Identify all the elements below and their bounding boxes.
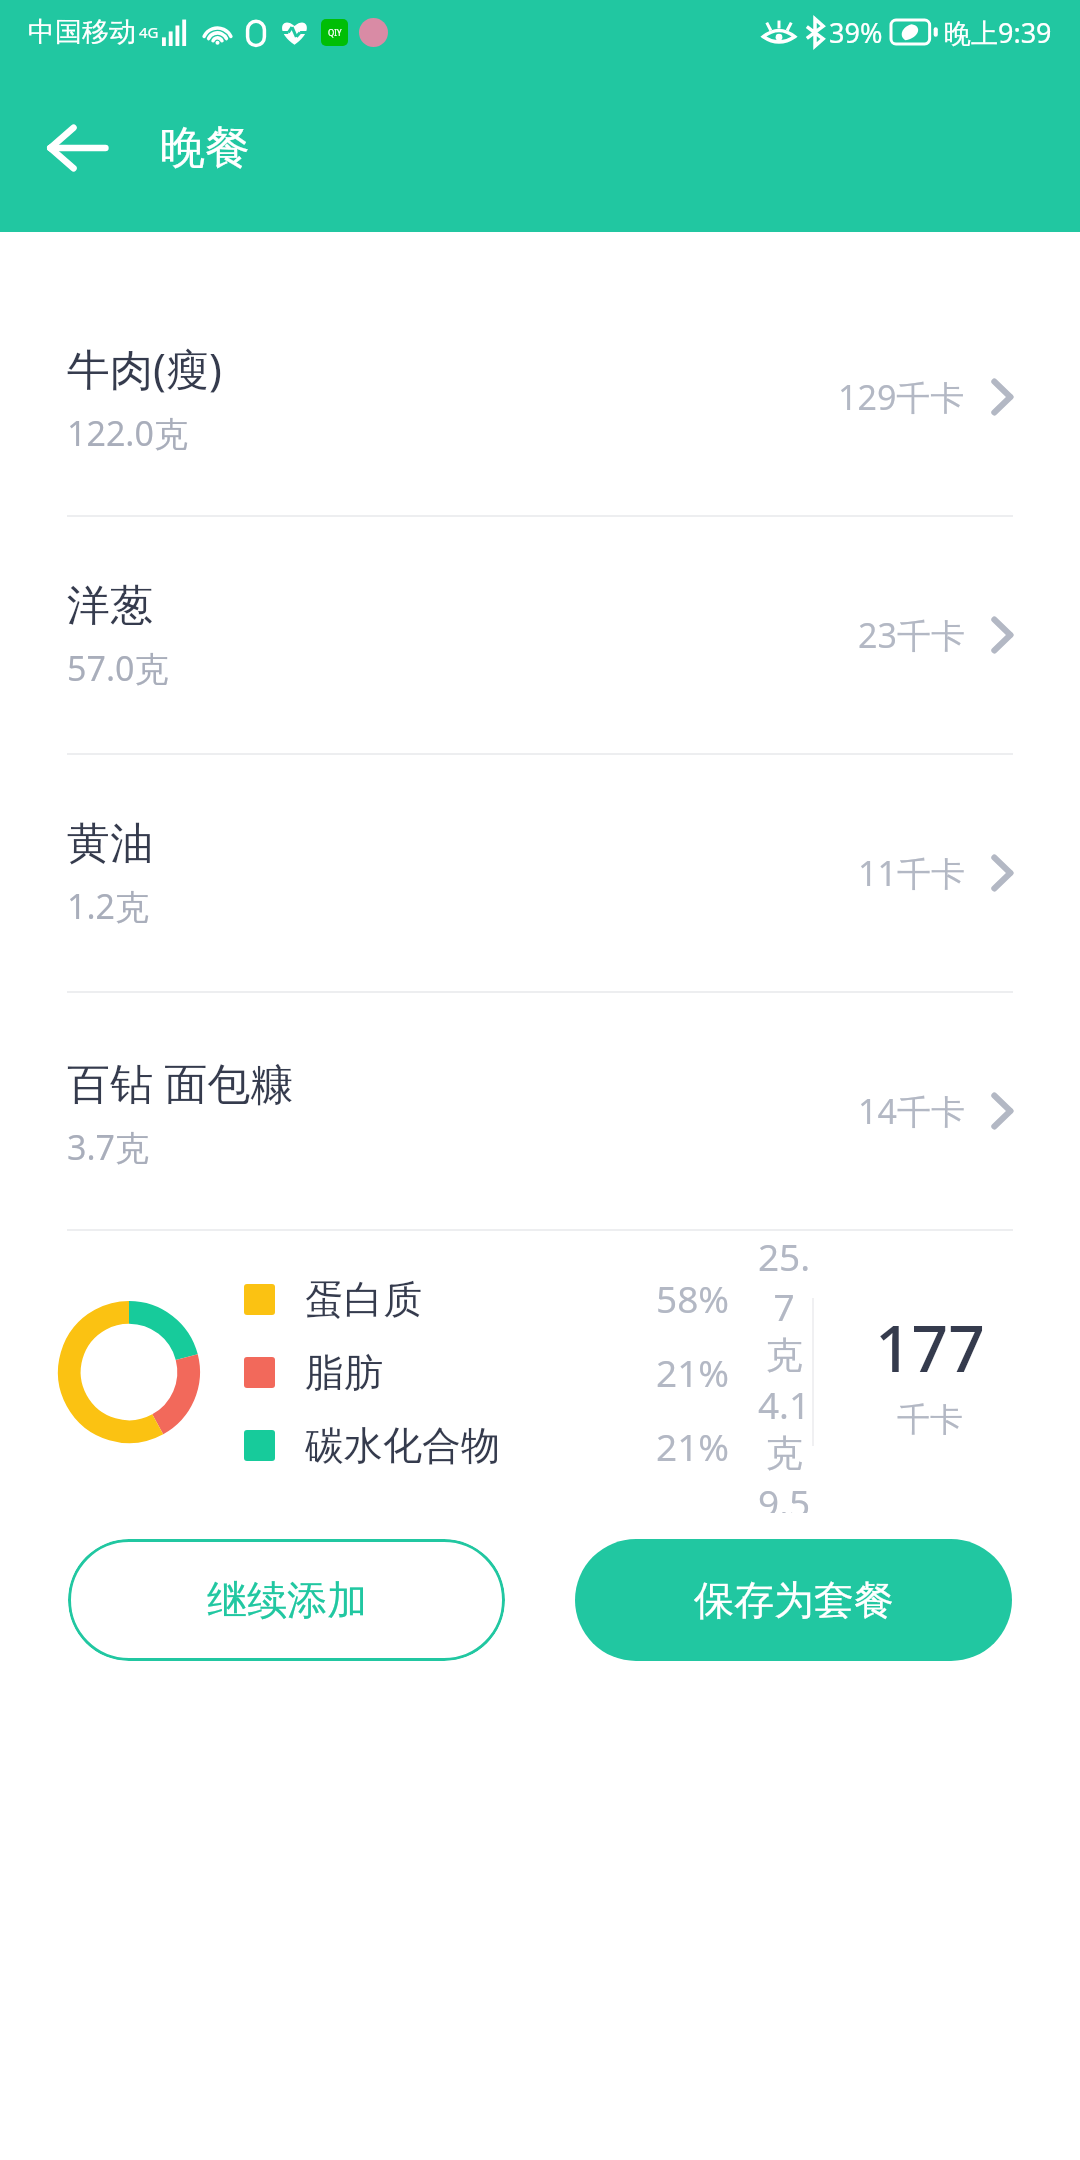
staticText: 14千卡 — [858, 1088, 965, 1134]
staticText: 晚上9:39 — [944, 14, 1052, 51]
staticText: 177 — [875, 1304, 985, 1391]
staticText: 碳水化合物 — [305, 1421, 500, 1470]
staticText: 牛肉(瘦) — [67, 339, 222, 398]
staticText: 4G — [139, 22, 159, 42]
staticText: 21% — [656, 1421, 730, 1471]
staticText: 3.7克 — [67, 1124, 150, 1170]
staticText: 129千卡 — [838, 374, 965, 420]
staticText: QIY — [328, 27, 342, 38]
staticText: 洋葱 — [67, 579, 153, 633]
staticText: 122.0克 — [67, 410, 188, 456]
staticText: 百钻 面包糠 — [67, 1053, 294, 1112]
staticText: 23千卡 — [858, 612, 965, 658]
staticText: 25.7克 — [756, 1231, 812, 1379]
staticText: 保存为套餐 — [694, 1575, 894, 1625]
button[interactable]: Back — [34, 105, 120, 191]
button[interactable]: 百钻 面包糠 — [0, 993, 1080, 1229]
staticText: 千卡 — [897, 1399, 963, 1441]
button[interactable]: 黄油 — [0, 755, 1080, 991]
button[interactable]: 继续添加 — [68, 1539, 505, 1661]
staticText: 58% — [656, 1273, 730, 1323]
staticText: 黄油 — [67, 817, 153, 871]
staticText: 11千卡 — [858, 850, 965, 896]
staticText: 4.1克 — [756, 1379, 812, 1477]
staticText: 21% — [656, 1347, 730, 1397]
staticText: 蛋白质 — [305, 1275, 422, 1324]
staticText: 继续添加 — [207, 1575, 367, 1625]
staticText: 9.5克 — [756, 1477, 812, 1513]
staticText: 中国移动 — [28, 15, 136, 49]
button[interactable]: 保存为套餐 — [575, 1539, 1012, 1661]
staticText: 57.0克 — [67, 645, 169, 691]
staticText: 1.2克 — [67, 883, 150, 929]
staticText: 39% — [829, 14, 883, 51]
staticText: 晚餐 — [160, 120, 250, 177]
button[interactable]: 洋葱 — [0, 517, 1080, 753]
button[interactable]: 牛肉(瘦) — [0, 279, 1080, 515]
staticText: 脂肪 — [305, 1348, 383, 1397]
